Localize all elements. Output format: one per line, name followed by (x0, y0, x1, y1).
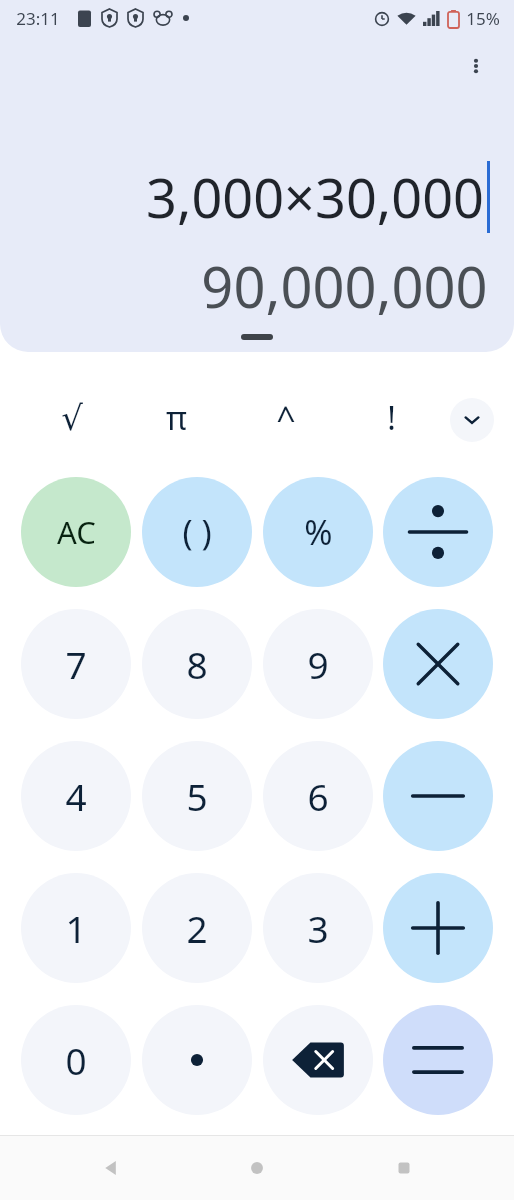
button[interactable]: Recents (368, 1140, 440, 1196)
button[interactable]: Expand (450, 398, 494, 442)
button[interactable]: √ (42, 388, 102, 448)
button[interactable]: π (146, 388, 206, 448)
button[interactable]: 3 (263, 873, 373, 983)
button[interactable]: Backspace (263, 1005, 373, 1115)
button[interactable] (241, 334, 273, 340)
button[interactable]: 1 (21, 873, 131, 983)
staticText: ( ) (182, 509, 212, 555)
staticText: 2 (186, 903, 208, 953)
button[interactable]: 8 (142, 609, 252, 719)
button[interactable]: More options (452, 42, 500, 90)
staticText: ^ (276, 395, 296, 441)
button[interactable]: ^ (256, 388, 316, 448)
button[interactable]: Back (75, 1140, 147, 1196)
button[interactable]: Minus (383, 741, 493, 851)
staticText: 6 (307, 771, 329, 821)
staticText: 3,000×30,000 (146, 160, 484, 234)
button[interactable]: 5 (142, 741, 252, 851)
staticText: 7 (65, 639, 87, 689)
button[interactable]: AC (21, 477, 131, 587)
button[interactable]: 0 (21, 1005, 131, 1115)
staticText: 23:11 (16, 7, 60, 30)
button[interactable]: 9 (263, 609, 373, 719)
staticText: 8 (186, 639, 208, 689)
button[interactable]: 6 (263, 741, 373, 851)
staticText: 3 (307, 903, 329, 953)
button[interactable]: Divide (383, 477, 493, 587)
staticText: 5 (186, 771, 208, 821)
button[interactable]: % (263, 477, 373, 587)
staticText: 15% (466, 7, 500, 30)
button[interactable]: Plus (383, 873, 493, 983)
button[interactable]: 4 (21, 741, 131, 851)
button[interactable]: Decimal point (142, 1005, 252, 1115)
staticText: % (304, 509, 333, 555)
staticText: π (166, 396, 187, 440)
staticText: 9 (307, 639, 329, 689)
button[interactable]: Equals (383, 1005, 493, 1115)
staticText: AC (57, 511, 96, 553)
button[interactable]: Multiply (383, 609, 493, 719)
staticText: 4 (65, 771, 87, 821)
button[interactable]: ! (361, 388, 421, 448)
staticText: ! (387, 396, 396, 440)
staticText: 0 (65, 1035, 87, 1085)
button[interactable]: 2 (142, 873, 252, 983)
button[interactable]: Home (221, 1140, 293, 1196)
button[interactable]: 7 (21, 609, 131, 719)
staticText: 90,000,000 (201, 248, 488, 324)
staticText: 1 (65, 903, 87, 953)
staticText: √ (61, 398, 83, 438)
button[interactable]: ( ) (142, 477, 252, 587)
